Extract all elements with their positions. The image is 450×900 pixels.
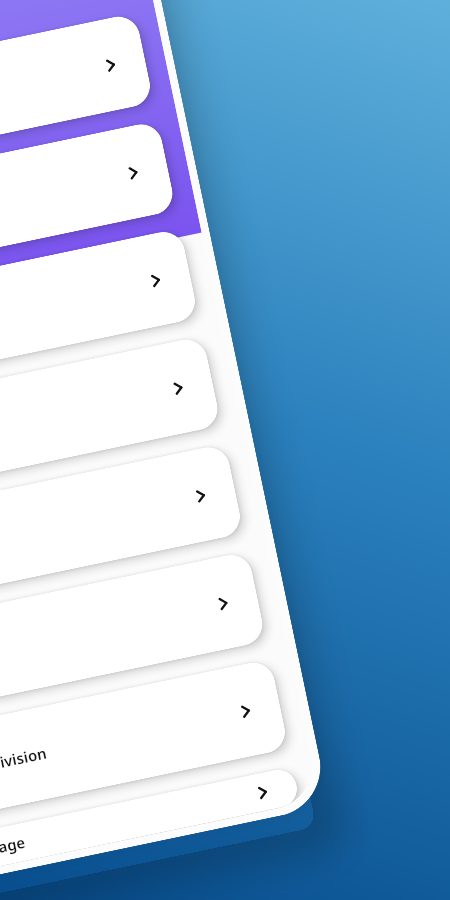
button[interactable]: Addition [0, 12, 154, 177]
staticText: Average [0, 784, 257, 864]
staticText: Subtraction [0, 164, 127, 244]
button[interactable]: Subtraction [0, 120, 177, 285]
button[interactable]: Average [0, 766, 301, 878]
staticText: Division [0, 380, 172, 459]
button[interactable]: Exponent [0, 551, 267, 715]
staticText: Floor Division [0, 703, 240, 782]
staticText: Multiplication [0, 272, 150, 352]
button[interactable]: Multiplication [0, 228, 199, 392]
button[interactable]: Floor Division [0, 659, 289, 823]
button[interactable]: Modulus [0, 443, 244, 608]
staticText: Exponent [0, 595, 217, 675]
staticText: Modulus [0, 487, 195, 567]
staticText: Addition [0, 56, 105, 136]
staticText: Python : Arithmetic Operations [0, 0, 97, 65]
button[interactable]: Division [0, 335, 222, 500]
